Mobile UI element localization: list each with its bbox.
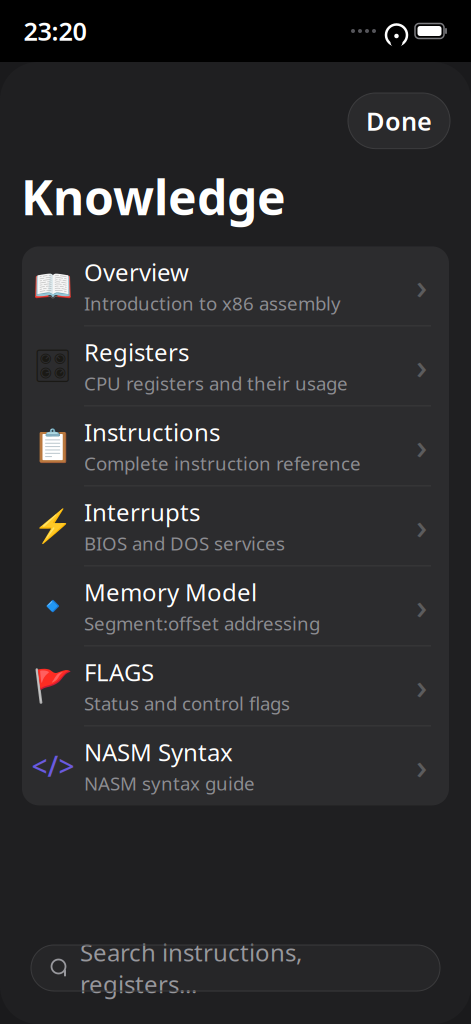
staticText: › <box>416 503 427 549</box>
staticText: › <box>416 423 427 469</box>
staticText: NASM syntax guide <box>84 771 255 796</box>
staticText: 📋 <box>33 428 73 464</box>
staticText: Complete instruction reference <box>84 451 361 476</box>
staticText: </> <box>31 747 74 784</box>
button[interactable]: 🚩 <box>22 646 449 726</box>
staticText: Knowledge <box>21 165 286 228</box>
staticText: › <box>416 343 427 389</box>
staticText: 🎛 <box>32 348 73 384</box>
staticText: Instructions <box>84 416 220 448</box>
staticText: Overview <box>84 256 189 288</box>
button[interactable]: 📖 <box>22 246 449 326</box>
staticText: 📖 <box>33 268 73 304</box>
staticText: Segment:offset addressing <box>84 611 320 636</box>
staticText: › <box>416 743 427 789</box>
button[interactable]: ⚡️ <box>22 486 449 566</box>
staticText: › <box>416 663 427 709</box>
staticText: Done <box>366 104 432 138</box>
staticText: ⚡️ <box>33 508 73 544</box>
staticText: BIOS and DOS services <box>84 531 285 556</box>
staticText: 23:20 <box>23 14 86 48</box>
button[interactable]: 🎛 <box>22 326 449 406</box>
button[interactable]: 📋 <box>22 406 449 486</box>
staticText: Memory Model <box>84 576 257 608</box>
staticText: Search instructions, registers... <box>80 936 302 1000</box>
button[interactable]: 🔹 <box>22 566 449 646</box>
staticText: › <box>416 583 427 629</box>
staticText: Interrupts <box>84 496 200 528</box>
staticText: 🔹 <box>33 588 73 624</box>
staticText: Introduction to x86 assembly <box>84 291 341 316</box>
staticText: Registers <box>84 336 189 368</box>
button[interactable]: </> <box>22 726 449 805</box>
staticText: CPU registers and their usage <box>84 371 348 396</box>
staticText: › <box>416 263 427 309</box>
button[interactable]: Search instructions, registers... <box>31 945 440 991</box>
staticText: Status and control flags <box>84 691 290 716</box>
staticText: FLAGS <box>84 656 154 688</box>
staticText: NASM Syntax <box>84 736 233 768</box>
button[interactable]: Done <box>348 93 450 149</box>
staticText: 🚩 <box>33 668 73 704</box>
